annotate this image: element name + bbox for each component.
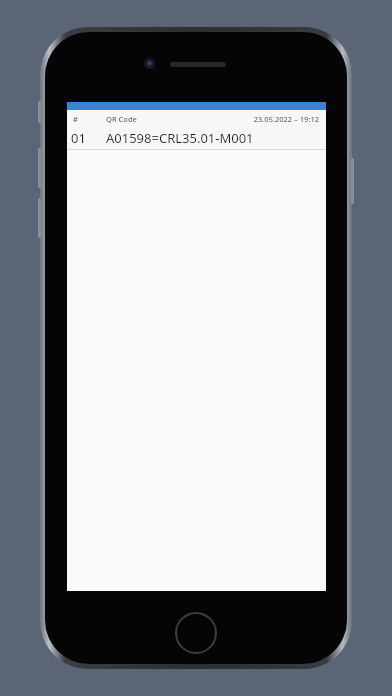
staticText: # <box>73 114 106 124</box>
button[interactable]: 01 <box>67 127 326 149</box>
staticText: QR Code <box>106 114 253 124</box>
staticText: A01598=CRL35.01-M001 <box>106 129 254 147</box>
other: Home <box>175 612 217 654</box>
staticText: 23.05.2022 – 19:12 <box>253 114 319 124</box>
staticText: 01 <box>71 129 106 147</box>
button[interactable]: # <box>67 110 326 127</box>
